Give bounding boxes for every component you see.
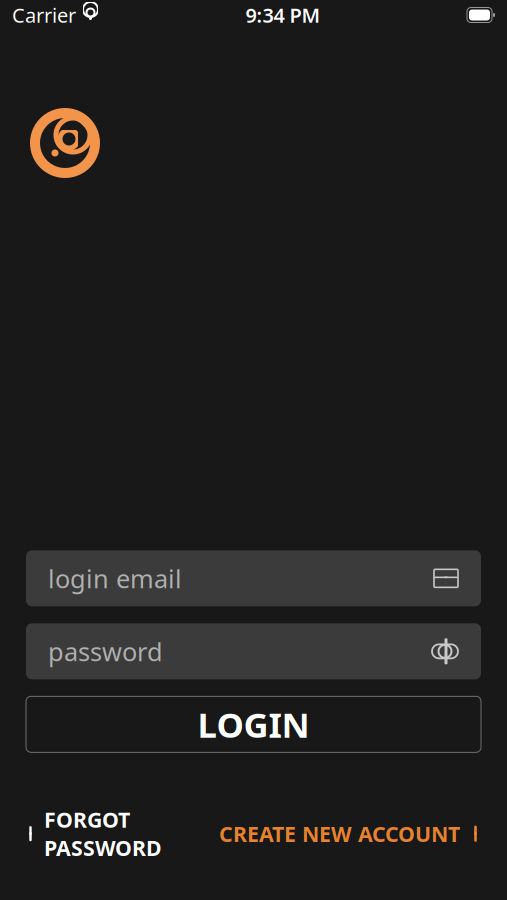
button[interactable]: LOGIN <box>26 696 481 752</box>
button[interactable]: login email <box>26 550 481 606</box>
button[interactable]: CREATE NEW ACCOUNT <box>209 811 481 856</box>
staticText: 9:34 PM <box>245 2 320 28</box>
staticText: LOGIN <box>197 701 309 747</box>
staticText: CREATE NEW ACCOUNT <box>219 819 460 848</box>
staticText: Carrier <box>12 2 76 28</box>
button[interactable]: password <box>26 623 481 679</box>
staticText: password <box>48 634 163 668</box>
staticText: FORGOT PASSWORD <box>44 805 162 862</box>
button[interactable]: FORGOT PASSWORD <box>26 797 172 870</box>
staticText: login email <box>48 561 182 595</box>
